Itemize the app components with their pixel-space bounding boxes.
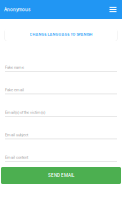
staticText: Email subject (5, 133, 28, 137)
button[interactable]: Email(s) of the victim(s) (5, 109, 117, 131)
button[interactable]: Email content (5, 154, 117, 176)
staticText: Email content (5, 155, 28, 160)
staticText: Fake name (5, 65, 24, 70)
staticText: SEND EMAIL (48, 173, 74, 178)
button[interactable]: CHANGE LANGUAGE TO SPANISH (5, 28, 117, 41)
button[interactable]: Email subject (5, 131, 117, 154)
staticText: Email(s) of the victim(s) (5, 110, 45, 115)
staticText: Fake email (5, 88, 24, 92)
button[interactable]: Fake name (5, 64, 117, 86)
button[interactable]: Fake email (5, 86, 117, 109)
staticText: Anonymous (4, 7, 30, 12)
button[interactable]: Menu (107, 4, 119, 15)
staticText: CHANGE LANGUAGE TO SPANISH (29, 32, 92, 37)
button[interactable]: SEND EMAIL (1, 167, 121, 184)
